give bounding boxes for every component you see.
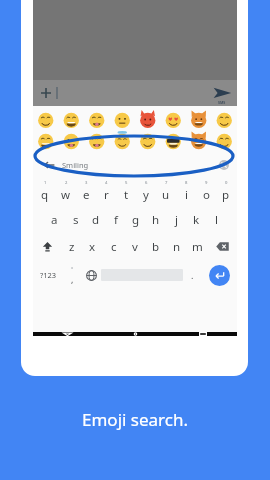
staticText: j [175,212,178,228]
staticText: 9 [205,180,208,186]
button[interactable]: Back [33,154,237,176]
staticText: ?123 [40,270,57,280]
button[interactable]: 2 [55,176,76,206]
button[interactable]: g [126,206,146,233]
button[interactable]: Change language [82,260,101,290]
staticText: z [69,239,75,255]
button[interactable]: 4 [96,176,116,206]
button[interactable]: ° [63,260,82,290]
button[interactable]: Shift [33,233,61,260]
button[interactable]: Home [101,332,169,336]
button[interactable]: Back [43,159,55,171]
staticText: t [124,187,129,203]
staticText: Smiling [62,160,89,170]
button[interactable]: 0 [216,176,236,206]
staticText: 3 [85,180,88,186]
button[interactable]: Backspace [208,233,237,260]
staticText: 7 [165,180,168,186]
staticText: 2 [65,180,68,186]
staticText: 8 [185,180,188,186]
button[interactable]: Emoji results [33,106,237,154]
button[interactable]: d [86,206,106,233]
button[interactable]: Send SMS [211,83,233,105]
staticText: c [111,239,117,255]
staticText: r [104,187,109,203]
staticText: p [222,187,230,203]
staticText: x [89,239,96,255]
staticText: k [193,212,200,228]
staticText: o [203,187,210,203]
staticText: . [191,269,194,281]
button[interactable]: 5 [116,176,136,206]
button[interactable]: s [65,206,86,233]
button[interactable]: a [44,206,65,233]
staticText: y [143,187,149,203]
button[interactable]: 7 [156,176,176,206]
button[interactable]: x [82,233,103,260]
button[interactable]: . [183,260,202,290]
button[interactable]: Recents [169,332,237,336]
button[interactable]: h [146,206,166,233]
button[interactable]: n [166,233,187,260]
staticText: ° [71,266,74,273]
staticText: 4 [105,180,108,186]
button[interactable]: 6 [136,176,156,206]
button[interactable]: l [206,206,226,233]
staticText: l [215,212,218,228]
button[interactable]: j [166,206,186,233]
staticText: q [41,187,49,203]
button[interactable]: 1 [34,176,55,206]
staticText: d [92,212,100,228]
staticText: 0 [225,180,228,186]
button[interactable]: Clear [219,160,229,170]
staticText: m [192,239,203,255]
staticText: b [152,239,160,255]
staticText: g [132,212,140,228]
button[interactable]: ?123 [33,260,63,290]
staticText: u [162,187,170,203]
button[interactable]: b [145,233,166,260]
button[interactable]: m [187,233,208,260]
button[interactable]: Back [33,332,101,336]
staticText: 6 [145,180,148,186]
staticText: v [132,239,138,255]
staticText: a [51,212,58,228]
button[interactable]: 8 [176,176,196,206]
button[interactable]: f [106,206,126,233]
staticText: h [152,212,160,228]
button[interactable]: Enter [202,260,237,290]
button[interactable]: Attach [39,86,53,100]
staticText: 5 [125,180,128,186]
button[interactable]: k [186,206,206,233]
button[interactable]: z [61,233,82,260]
button[interactable]: v [124,233,145,260]
button[interactable]: c [103,233,124,260]
staticText: Emoji search. [0,408,270,431]
staticText: e [83,187,90,203]
button[interactable]: 9 [196,176,216,206]
staticText: 1 [44,180,47,186]
staticText: s [73,212,79,228]
staticText: w [61,187,71,203]
staticText: , [71,273,74,285]
staticText: i [185,187,188,203]
button[interactable]: 3 [76,176,96,206]
staticText: SMS [218,100,226,105]
staticText: f [114,212,118,228]
staticText: n [173,239,181,255]
